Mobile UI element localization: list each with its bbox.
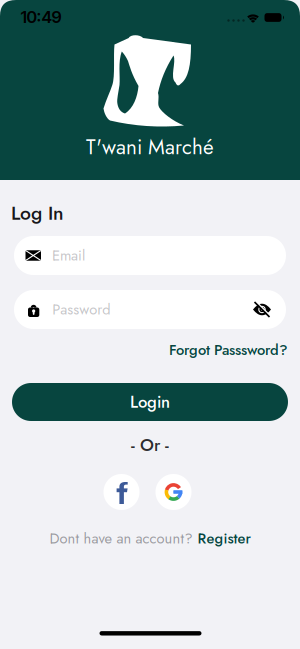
button[interactable]: Register xyxy=(197,528,250,549)
staticText: Dont have an account? xyxy=(49,528,192,549)
staticText: - Or - xyxy=(131,432,169,457)
button[interactable]: Show password xyxy=(253,301,271,317)
staticText: Password xyxy=(52,299,110,320)
staticText: 10:49 xyxy=(20,7,61,27)
staticText: Login xyxy=(130,390,170,414)
button[interactable]: Login xyxy=(12,383,288,421)
staticText: Register xyxy=(197,528,250,549)
button[interactable]: Forgot Passsword? xyxy=(169,339,288,361)
button[interactable]: Log in with Google xyxy=(155,474,191,510)
staticText: T'wani Marché xyxy=(86,132,214,162)
staticText: Forgot Passsword? xyxy=(169,339,288,361)
button[interactable]: Log in with Facebook xyxy=(103,474,139,510)
staticText: Log In xyxy=(11,199,64,227)
staticText: Email xyxy=(52,245,85,266)
